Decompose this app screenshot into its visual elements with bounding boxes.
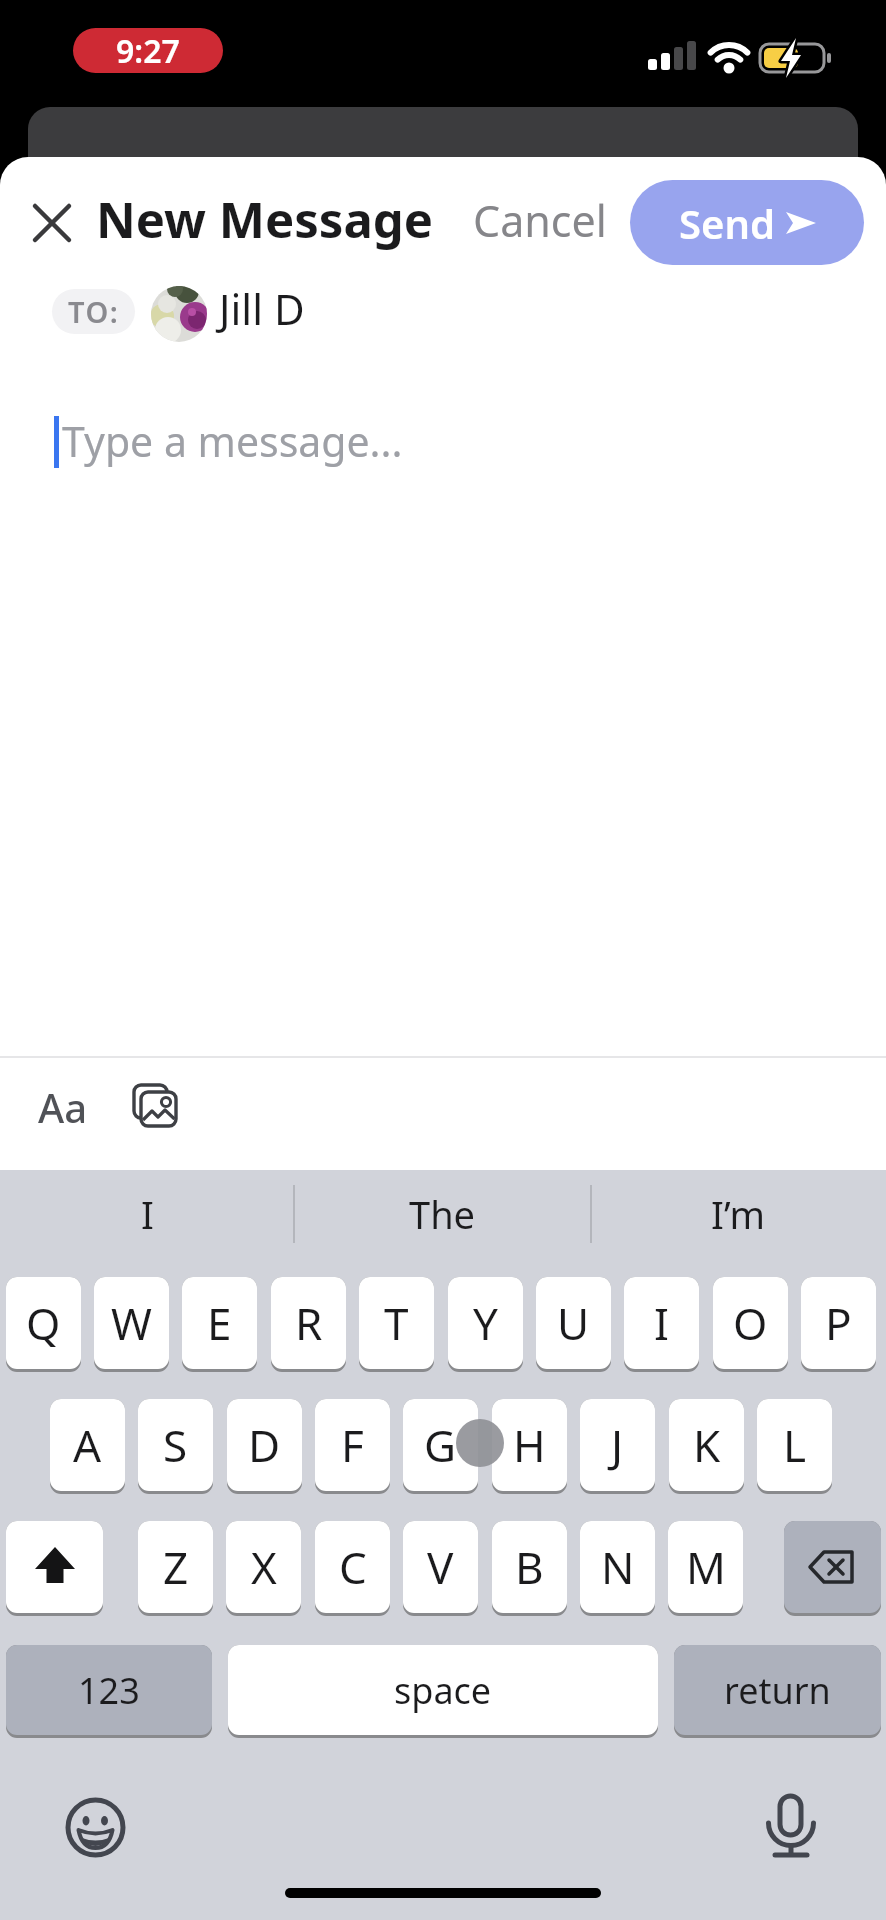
- staticText: C: [339, 1537, 367, 1597]
- button[interactable]: [132, 1083, 178, 1129]
- staticText: J: [611, 1415, 624, 1475]
- staticText: Aa: [38, 1080, 88, 1134]
- button[interactable]: space: [228, 1645, 658, 1738]
- staticText: Z: [163, 1537, 189, 1597]
- button[interactable]: V: [403, 1521, 478, 1616]
- button[interactable]: Cancel: [473, 191, 607, 250]
- button[interactable]: [34, 205, 70, 241]
- staticText: Q: [26, 1293, 61, 1353]
- staticText: Type a message...: [62, 413, 403, 469]
- button[interactable]: D: [227, 1399, 302, 1494]
- staticText: Cancel: [473, 191, 607, 250]
- button[interactable]: K: [669, 1399, 744, 1494]
- button[interactable]: C: [315, 1521, 390, 1616]
- staticText: K: [693, 1415, 721, 1475]
- staticText: I: [654, 1293, 669, 1353]
- staticText: New Message: [96, 186, 434, 253]
- staticText: D: [248, 1415, 281, 1475]
- staticText: X: [251, 1537, 277, 1597]
- button[interactable]: Send: [630, 180, 864, 265]
- staticText: O: [733, 1293, 768, 1353]
- button[interactable]: O: [713, 1277, 788, 1372]
- staticText: space: [394, 1666, 492, 1715]
- staticText: I: [141, 1188, 154, 1240]
- button[interactable]: Y: [448, 1277, 523, 1372]
- button[interactable]: M: [668, 1521, 743, 1616]
- staticText: F: [341, 1415, 364, 1475]
- button[interactable]: B: [492, 1521, 567, 1616]
- button[interactable]: W: [94, 1277, 169, 1372]
- button[interactable]: E: [182, 1277, 257, 1372]
- staticText: Jill D: [219, 280, 305, 337]
- button[interactable]: H: [492, 1399, 567, 1494]
- button[interactable]: [151, 286, 207, 342]
- staticText: M: [686, 1537, 726, 1597]
- button[interactable]: [6, 1521, 103, 1616]
- button[interactable]: J: [580, 1399, 655, 1494]
- button[interactable]: T: [359, 1277, 434, 1372]
- button[interactable]: 9:27: [73, 28, 223, 73]
- staticText: T: [384, 1293, 409, 1353]
- button[interactable]: U: [536, 1277, 611, 1372]
- staticText: return: [724, 1666, 831, 1715]
- staticText: W: [111, 1293, 152, 1353]
- button[interactable]: R: [271, 1277, 346, 1372]
- staticText: V: [427, 1537, 454, 1597]
- button[interactable]: Q: [6, 1277, 81, 1372]
- staticText: A: [73, 1415, 102, 1475]
- button[interactable]: S: [138, 1399, 213, 1494]
- staticText: I’m: [711, 1188, 765, 1240]
- staticText: P: [825, 1293, 852, 1353]
- staticText: Y: [473, 1293, 498, 1353]
- staticText: 9:27: [116, 29, 180, 73]
- staticText: G: [424, 1415, 457, 1475]
- button[interactable]: The: [295, 1170, 590, 1258]
- button[interactable]: P: [801, 1277, 876, 1372]
- staticText: U: [557, 1293, 590, 1353]
- staticText: S: [163, 1415, 188, 1475]
- staticText: R: [295, 1293, 323, 1353]
- staticText: 123: [78, 1666, 140, 1715]
- staticText: N: [601, 1537, 635, 1597]
- button[interactable]: I: [0, 1170, 295, 1258]
- button[interactable]: [766, 1793, 816, 1859]
- button[interactable]: A: [50, 1399, 125, 1494]
- staticText: The: [409, 1188, 476, 1240]
- button[interactable]: L: [757, 1399, 832, 1494]
- button[interactable]: 123: [6, 1645, 212, 1738]
- button[interactable]: [65, 1797, 126, 1858]
- staticText: E: [207, 1293, 232, 1353]
- button[interactable]: I: [624, 1277, 699, 1372]
- button[interactable]: F: [315, 1399, 390, 1494]
- button[interactable]: G: [403, 1399, 478, 1494]
- staticText: L: [783, 1415, 807, 1475]
- button[interactable]: [784, 1521, 881, 1616]
- staticText: H: [513, 1415, 546, 1475]
- button[interactable]: X: [226, 1521, 301, 1616]
- staticText: B: [515, 1537, 544, 1597]
- staticText: TO:: [68, 292, 120, 331]
- button[interactable]: I’m: [590, 1170, 886, 1258]
- button[interactable]: N: [580, 1521, 655, 1616]
- staticText: Send: [679, 196, 775, 250]
- button[interactable]: return: [674, 1645, 881, 1738]
- button[interactable]: Aa: [38, 1080, 88, 1134]
- button[interactable]: Z: [138, 1521, 213, 1616]
